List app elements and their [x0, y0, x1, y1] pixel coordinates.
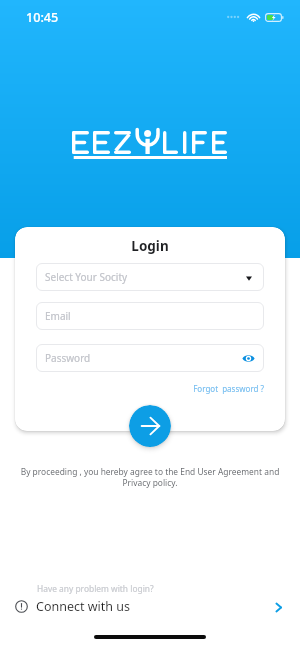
button[interactable]: Email — [36, 302, 264, 330]
button[interactable]: Forgot password ? — [36, 383, 264, 394]
button[interactable]: Password — [36, 344, 264, 372]
staticText: 10:45 — [26, 9, 59, 26]
staticText: Have any problem with login? — [37, 583, 154, 594]
staticText: Select Your Socity — [45, 270, 128, 284]
button[interactable]: Connect with us — [0, 598, 300, 615]
button[interactable]: Connect with us — [270, 599, 286, 615]
staticText: By proceeding , you hereby agree to the … — [18, 466, 282, 488]
button[interactable]: Select Your Socity — [36, 263, 264, 291]
staticText: Email — [45, 309, 71, 323]
button[interactable]: Submit — [129, 405, 171, 447]
staticText: Login — [36, 237, 264, 255]
staticText: Password — [45, 351, 91, 365]
other: Show password — [242, 354, 255, 363]
staticText: Connect with us — [36, 598, 130, 615]
